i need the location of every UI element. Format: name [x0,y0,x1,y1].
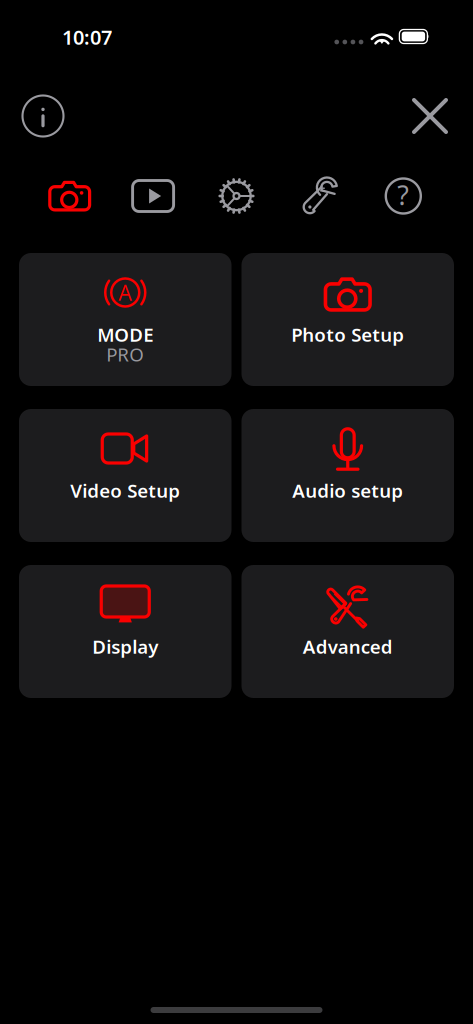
button[interactable]: Information [21,94,65,138]
button[interactable]: Playback [111,180,195,211]
button[interactable]: Video Setup [19,409,231,542]
button[interactable]: Display [19,565,231,698]
button[interactable]: Settings [195,177,278,215]
button[interactable]: Help [362,178,445,214]
button[interactable]: Photo Setup [241,253,454,386]
staticText: ? [397,177,409,213]
staticText: Display [92,634,158,659]
button[interactable]: Audio setup [241,409,454,542]
staticText: Advanced [303,634,393,659]
button[interactable]: A [19,253,231,386]
staticText: Audio setup [292,478,403,503]
staticText: 10:07 [62,24,112,50]
button[interactable]: Tools [278,176,362,216]
staticText: Photo Setup [291,322,404,347]
staticText: A [118,278,132,307]
button[interactable]: Close [408,94,452,138]
staticText: Video Setup [70,478,180,503]
staticText: PRO [106,342,144,367]
button[interactable]: Advanced [241,565,454,698]
button[interactable]: Camera [28,180,111,211]
staticText: MODE [97,322,153,347]
